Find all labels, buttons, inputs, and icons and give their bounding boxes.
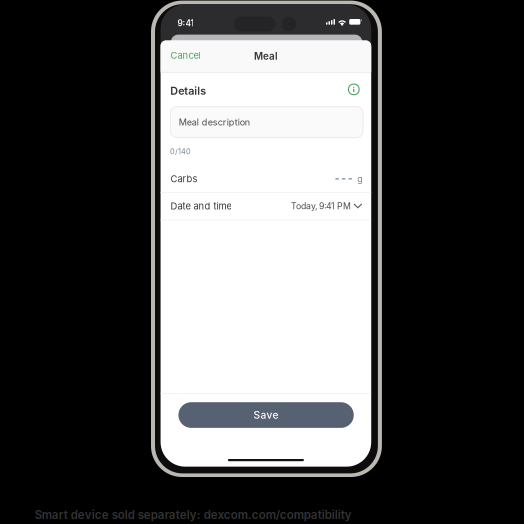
staticText: Date and time bbox=[170, 201, 231, 212]
button[interactable]: Save bbox=[178, 402, 354, 428]
staticText: Meal bbox=[254, 50, 278, 62]
button[interactable]: Cancel bbox=[169, 47, 201, 63]
staticText: Carbs bbox=[170, 173, 197, 184]
staticText: 9:41 bbox=[177, 18, 193, 28]
button[interactable]: Meal description bbox=[170, 107, 363, 138]
staticText: Save bbox=[254, 409, 279, 421]
staticText: Today, 9:41 PM bbox=[291, 201, 351, 211]
staticText: Smart device sold separately: dexcom.com… bbox=[35, 508, 352, 522]
staticText: g bbox=[357, 173, 362, 184]
staticText: Cancel bbox=[170, 50, 200, 61]
button[interactable]: Date and time bbox=[161, 193, 371, 219]
staticText: Meal description bbox=[179, 117, 250, 128]
button[interactable]: About meal details bbox=[348, 83, 360, 95]
button[interactable]: Carbs bbox=[161, 166, 371, 192]
staticText: Details bbox=[170, 84, 206, 97]
staticText: 0/140 bbox=[170, 147, 191, 156]
